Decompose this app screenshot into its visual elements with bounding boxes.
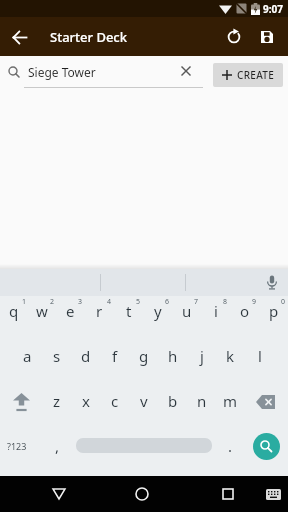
staticText: 2 [50,297,55,307]
button[interactable]: u [172,296,201,341]
button[interactable] [253,433,280,460]
button[interactable] [72,431,216,476]
button[interactable]: t [114,296,143,341]
staticText: 4 [107,297,112,307]
button[interactable]: h [158,341,187,386]
button[interactable]: k [216,341,245,386]
staticText: 7 [194,297,199,307]
button[interactable] [215,481,241,507]
button[interactable]: n [187,386,216,431]
button[interactable] [0,386,42,431]
staticText: g [139,346,149,366]
button[interactable]: w [28,296,56,341]
staticText: f [112,346,118,366]
staticText: k [226,346,235,366]
button[interactable]: ?123 [0,431,43,476]
button[interactable] [46,481,72,507]
staticText: v [140,391,148,411]
staticText: ?123 [7,440,27,452]
button[interactable]: , [43,431,72,476]
button[interactable]: r [85,296,114,341]
staticText: z [53,391,61,411]
button[interactable]: x [71,386,100,431]
staticText: b [168,391,178,411]
button[interactable]: p [259,296,288,341]
button[interactable]: j [187,341,216,386]
button[interactable] [221,24,247,50]
staticText: CREATE [237,68,275,82]
button[interactable]: s [42,341,71,386]
staticText: t [126,301,132,321]
staticText: Starter Deck [50,28,127,46]
button[interactable]: e [56,296,85,341]
staticText: s [53,346,61,366]
staticText: q [9,301,19,321]
staticText: 1 [22,297,27,307]
button[interactable] [262,483,284,505]
staticText: m [223,391,238,411]
button[interactable] [262,273,282,293]
staticText: r [96,301,103,321]
staticText: e [66,301,75,321]
button[interactable]: f [100,341,129,386]
button[interactable]: m [216,386,245,431]
staticText: 6 [165,297,170,307]
button[interactable] [245,386,288,431]
staticText: p [269,301,279,321]
staticText: y [154,301,162,321]
staticText: l [258,346,262,366]
staticText: o [240,301,250,321]
staticText: c [111,391,119,411]
staticText: u [182,301,192,321]
staticText: 5 [136,297,141,307]
button[interactable]: g [129,341,158,386]
button[interactable] [254,24,280,50]
staticText: a [23,346,32,366]
staticText: . [228,436,233,456]
staticText: 3 [78,297,83,307]
staticText: h [168,346,178,366]
button[interactable]: v [129,386,158,431]
button[interactable]: z [42,386,71,431]
button[interactable]: . [216,431,245,476]
button[interactable]: o [230,296,259,341]
staticText: w [36,301,48,321]
button[interactable]: CREATE [213,63,283,87]
staticText: j [200,346,204,366]
staticText: 9 [252,297,257,307]
button[interactable]: b [158,386,187,431]
staticText: , [55,436,60,456]
button[interactable] [7,24,33,50]
staticText: Siege Tower [28,64,96,80]
button[interactable] [176,61,196,81]
button[interactable]: i [201,296,230,341]
staticText: x [82,391,90,411]
button[interactable]: y [143,296,172,341]
staticText: n [197,391,207,411]
button[interactable]: a [13,341,42,386]
button[interactable]: l [245,341,274,386]
button[interactable] [129,481,155,507]
button[interactable]: d [71,341,100,386]
staticText: 8 [223,297,228,307]
button[interactable]: q [0,296,28,341]
staticText: 9:07 [263,2,283,16]
staticText: d [81,346,91,366]
button[interactable]: c [100,386,129,431]
staticText: 0 [281,297,286,307]
staticText: i [214,301,218,321]
